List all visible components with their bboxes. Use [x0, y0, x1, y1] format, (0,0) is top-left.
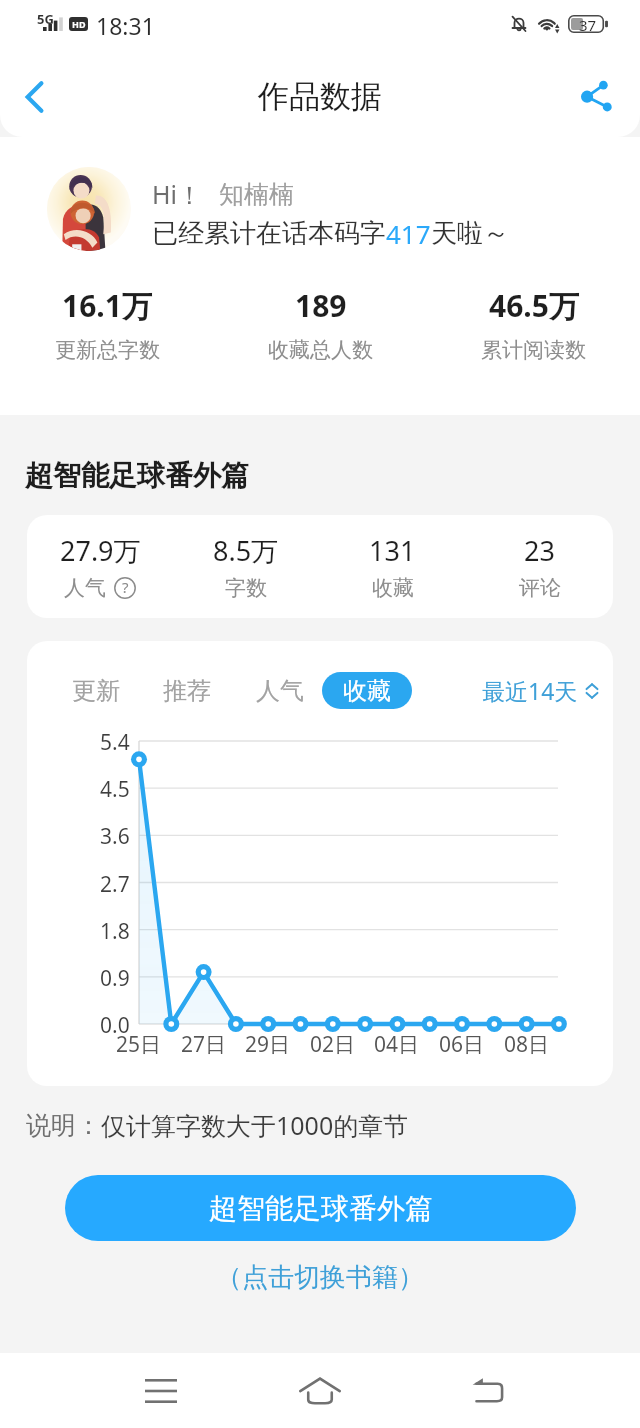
staticText: 0.0 — [100, 1011, 130, 1040]
staticText: 评论 — [519, 575, 561, 601]
button[interactable]: 收藏 — [322, 672, 412, 709]
button[interactable]: 推荐 — [163, 676, 211, 706]
staticText: Hi！ — [152, 177, 202, 211]
staticText: 25日 — [116, 1030, 162, 1059]
staticText: 4.5 — [100, 775, 130, 804]
button[interactable]: 最近14天 — [482, 675, 600, 706]
staticText: ? — [122, 577, 129, 597]
staticText: 04日 — [374, 1030, 420, 1059]
button[interactable]: 46.5万 — [427, 285, 640, 363]
staticText: 字数 — [225, 575, 267, 601]
staticText: 29日 — [245, 1030, 291, 1059]
staticText: 3.6 — [100, 822, 130, 851]
button[interactable]: Back — [11, 73, 59, 121]
staticText: 收藏 — [372, 575, 414, 601]
button[interactable]: Share — [573, 73, 621, 121]
staticText: 27日 — [181, 1030, 227, 1059]
staticText: 知楠楠 — [219, 179, 294, 210]
staticText: 2.7 — [100, 870, 130, 899]
staticText: 人气 — [64, 575, 106, 601]
button[interactable]: 131 — [319, 515, 466, 618]
button[interactable]: 超智能足球番外篇 — [65, 1175, 576, 1241]
staticText: 超智能足球番外篇 — [209, 1191, 433, 1226]
button[interactable]: 8.5万 — [173, 515, 319, 618]
staticText: 189 — [295, 285, 347, 326]
staticText: 417 — [386, 216, 431, 251]
staticText: 23 — [524, 532, 555, 569]
button[interactable]: 27.9万 — [27, 515, 173, 618]
button[interactable]: 16.1万 — [0, 285, 214, 363]
staticText: 累计阅读数 — [481, 337, 586, 363]
staticText: 5.4 — [100, 728, 130, 757]
button[interactable]: （点击切换书籍） — [204, 1257, 436, 1298]
staticText: 06日 — [439, 1030, 485, 1059]
button[interactable]: 人气 — [256, 676, 304, 706]
staticText: 更新总字数 — [55, 337, 160, 363]
staticText: 天啦～ — [431, 217, 509, 250]
staticText: 131 — [369, 532, 416, 569]
staticText: 超智能足球番外篇 — [25, 458, 249, 493]
staticText: 8.5万 — [213, 532, 279, 569]
staticText: 1.8 — [100, 917, 130, 946]
button[interactable]: Recent apps — [125, 1367, 197, 1415]
staticText: 仅计算字数大于1000的章节 — [101, 1108, 409, 1142]
staticText: 收藏 — [343, 676, 391, 706]
staticText: 46.5万 — [489, 285, 579, 326]
staticText: 0.9 — [100, 964, 130, 993]
staticText: 18:31 — [96, 10, 155, 41]
staticText: （点击切换书籍） — [216, 1261, 424, 1294]
staticText: 16.1万 — [62, 285, 152, 326]
staticText: HD — [72, 18, 86, 30]
staticText: 已经累计在话本码字 — [152, 217, 386, 250]
staticText: 最近14天 — [482, 675, 578, 706]
staticText: 02日 — [310, 1030, 356, 1059]
button[interactable]: Back — [452, 1366, 524, 1414]
staticText: 5G — [37, 10, 54, 28]
staticText: 37 — [579, 15, 597, 33]
staticText: 27.9万 — [60, 532, 141, 569]
button[interactable]: 23 — [466, 515, 613, 618]
staticText: 收藏总人数 — [268, 337, 373, 363]
staticText: 说明： — [26, 1110, 101, 1141]
button[interactable]: 189 — [214, 285, 427, 363]
button[interactable]: Home — [284, 1366, 356, 1414]
button[interactable]: 更新 — [72, 676, 120, 706]
staticText: 作品数据 — [258, 77, 382, 116]
staticText: 08日 — [504, 1030, 550, 1059]
